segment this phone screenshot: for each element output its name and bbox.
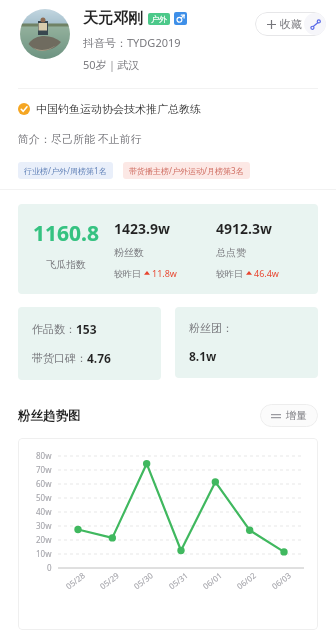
staticText: 较昨日: [114, 268, 141, 279]
staticText: 05/30: [131, 569, 155, 591]
button[interactable]: 带货播主榜/户外运动/月榜第3名: [123, 162, 250, 179]
staticText: 70w: [36, 464, 52, 475]
staticText: 20w: [36, 534, 52, 545]
staticText: 06/01: [200, 569, 224, 591]
staticText: 行业榜/户外/周榜第1名: [24, 165, 107, 176]
staticText: 带货播主榜/户外运动/月榜第3名: [129, 165, 244, 176]
staticText: 05/29: [97, 569, 121, 591]
button[interactable]: Share: [304, 13, 326, 35]
staticText: 60w: [36, 478, 52, 489]
staticText: 153: [76, 321, 97, 337]
button[interactable]: 80w: [18, 438, 318, 630]
staticText: 较昨日: [216, 268, 243, 279]
button[interactable]: 1160.8: [18, 204, 318, 294]
staticText: 增量: [286, 409, 307, 422]
staticText: 户外: [151, 14, 167, 24]
staticText: 收藏: [280, 17, 302, 31]
staticText: 30w: [36, 520, 52, 531]
staticText: 40w: [36, 506, 52, 517]
staticText: 总点赞: [216, 246, 246, 259]
staticText: 50岁｜武汉: [83, 57, 140, 72]
staticText: 4912.3w: [216, 219, 272, 238]
staticText: 粉丝趋势图: [18, 408, 81, 424]
button[interactable]: 粉丝团：: [175, 307, 318, 378]
staticText: 06/03: [269, 569, 293, 591]
staticText: 46.4w: [254, 267, 279, 279]
staticText: 05/31: [166, 569, 190, 591]
staticText: 80w: [36, 450, 52, 461]
staticText: 天元邓刚: [83, 9, 143, 28]
button[interactable]: 行业榜/户外/周榜第1名: [18, 162, 113, 179]
staticText: 50w: [36, 492, 52, 503]
staticText: 飞瓜指数: [46, 258, 86, 271]
staticText: 粉丝数: [114, 246, 144, 259]
staticText: 05/28: [63, 569, 87, 591]
staticText: 粉丝团：: [189, 321, 233, 335]
staticText: 06/02: [234, 569, 258, 591]
staticText: 8.1w: [189, 348, 217, 364]
button[interactable]: 增量: [260, 404, 318, 427]
staticText: 1160.8: [33, 219, 99, 248]
staticText: 11.8w: [152, 267, 177, 279]
staticText: 0: [47, 562, 52, 573]
button[interactable]: 收藏: [255, 12, 326, 36]
staticText: 作品数：: [32, 322, 76, 336]
staticText: 抖音号：TYDG2019: [83, 35, 181, 50]
staticText: 1423.9w: [114, 219, 170, 238]
staticText: 4.76: [87, 350, 111, 366]
staticText: 简介：尽己所能 不止前行: [18, 131, 142, 146]
staticText: 中国钓鱼运动协会技术推广总教练: [36, 102, 201, 116]
button[interactable]: 作品数：: [18, 307, 161, 380]
staticText: 带货口碑：: [32, 351, 87, 365]
staticText: 10w: [36, 548, 52, 559]
